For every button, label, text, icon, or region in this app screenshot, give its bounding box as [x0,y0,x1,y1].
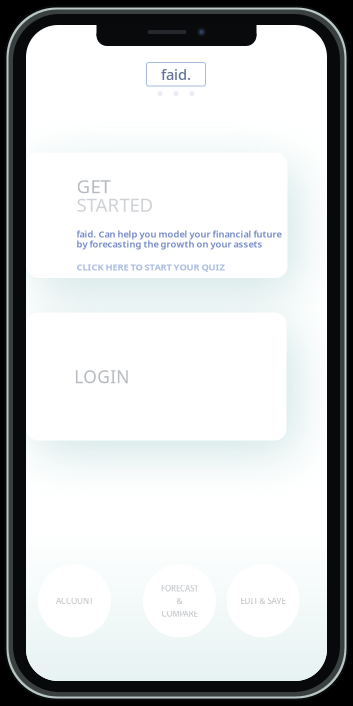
staticText: GET [76,173,110,198]
staticText: faid. Can help you model your financial … [76,228,281,240]
staticText: STARTED [76,192,153,217]
staticText: COMPARE [161,608,197,619]
staticText: faid. [161,64,191,84]
staticText: & [176,596,182,606]
staticText: CLICK HERE TO START YOUR QUIZ [76,261,224,273]
staticText: by forecasting the growth on your assets [76,238,262,250]
staticText: ACCOUNT [56,596,93,606]
button[interactable]: LOGIN [26,312,286,440]
staticText: LOGIN [74,365,129,388]
staticText: FORECAST [161,583,198,594]
button[interactable]: ACCOUNT [38,564,111,637]
staticText: EDIT & SAVE [241,596,286,606]
button[interactable]: GET [26,152,287,278]
button[interactable]: EDIT & SAVE [227,564,300,637]
button[interactable]: FORECAST [143,564,216,637]
